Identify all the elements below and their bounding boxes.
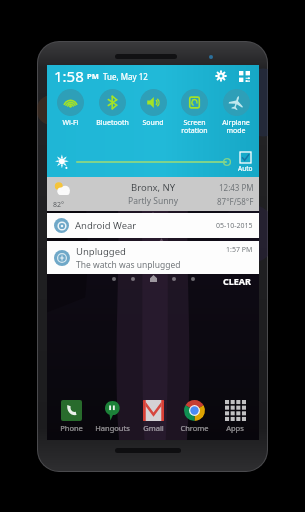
button[interactable]: Bluetooth — [92, 89, 132, 128]
staticText: 87°F/58°F — [217, 196, 254, 207]
button[interactable]: Airplane mode — [216, 89, 256, 135]
staticText: Auto — [238, 164, 253, 173]
staticText: The watch was unplugged — [76, 259, 181, 271]
button[interactable]: Android Wear — [47, 213, 259, 238]
staticText: Maps — [119, 92, 139, 102]
button[interactable]: Gmail — [133, 400, 173, 433]
button[interactable]: Clock — [157, 69, 197, 102]
staticText: Sound — [142, 118, 164, 128]
button[interactable] — [77, 154, 232, 170]
staticText: Bluetooth — [96, 118, 129, 128]
button[interactable]: Hangouts — [92, 400, 132, 433]
staticText: Android Wear — [75, 219, 137, 232]
staticText: 82° — [53, 200, 65, 210]
button[interactable]: Wi-Fi — [50, 89, 90, 128]
button[interactable]: Settings — [212, 67, 230, 85]
button[interactable]: Phone — [51, 400, 91, 433]
staticText: Airplane mode — [222, 118, 250, 135]
staticText: Facebook — [64, 92, 98, 102]
staticText: Apps — [226, 423, 244, 433]
button[interactable]: 82° — [47, 177, 259, 211]
button[interactable]: Facebook — [61, 69, 101, 102]
button[interactable]: Auto — [238, 152, 253, 173]
button[interactable]: Edit quick settings — [235, 67, 253, 85]
staticText: 1:57 PM — [226, 245, 253, 255]
button[interactable]: Sound — [133, 89, 173, 128]
staticText: Hangouts — [95, 423, 130, 433]
button[interactable]: Camera — [205, 69, 245, 102]
staticText: 05-10-2015 — [216, 221, 253, 231]
staticText: Tue, May 12 — [103, 71, 148, 82]
staticText: Partly Sunny — [128, 195, 178, 207]
button[interactable]: Chrome — [174, 400, 214, 433]
staticText: Phone — [60, 423, 83, 433]
staticText: Clock — [168, 92, 187, 102]
staticText: Wi-Fi — [62, 118, 79, 128]
button[interactable]: Apps — [215, 400, 255, 433]
staticText: Gmail — [143, 423, 164, 433]
staticText: Chrome — [180, 423, 209, 433]
staticText: 1:58 — [54, 66, 84, 86]
button[interactable]: Screen rotation — [174, 89, 214, 135]
staticText: Unplugged — [76, 245, 126, 258]
staticText: Bronx, NY — [131, 181, 176, 194]
staticText: Screen rotation — [181, 118, 208, 135]
staticText: PM — [87, 71, 99, 81]
button[interactable]: Maps — [109, 69, 149, 102]
staticText: 12:43 PM — [219, 182, 254, 193]
button[interactable]: Unplugged — [47, 241, 259, 274]
staticText: CLEAR — [223, 275, 251, 287]
staticText: Camera — [211, 92, 239, 102]
button[interactable]: CLEAR — [223, 275, 251, 287]
